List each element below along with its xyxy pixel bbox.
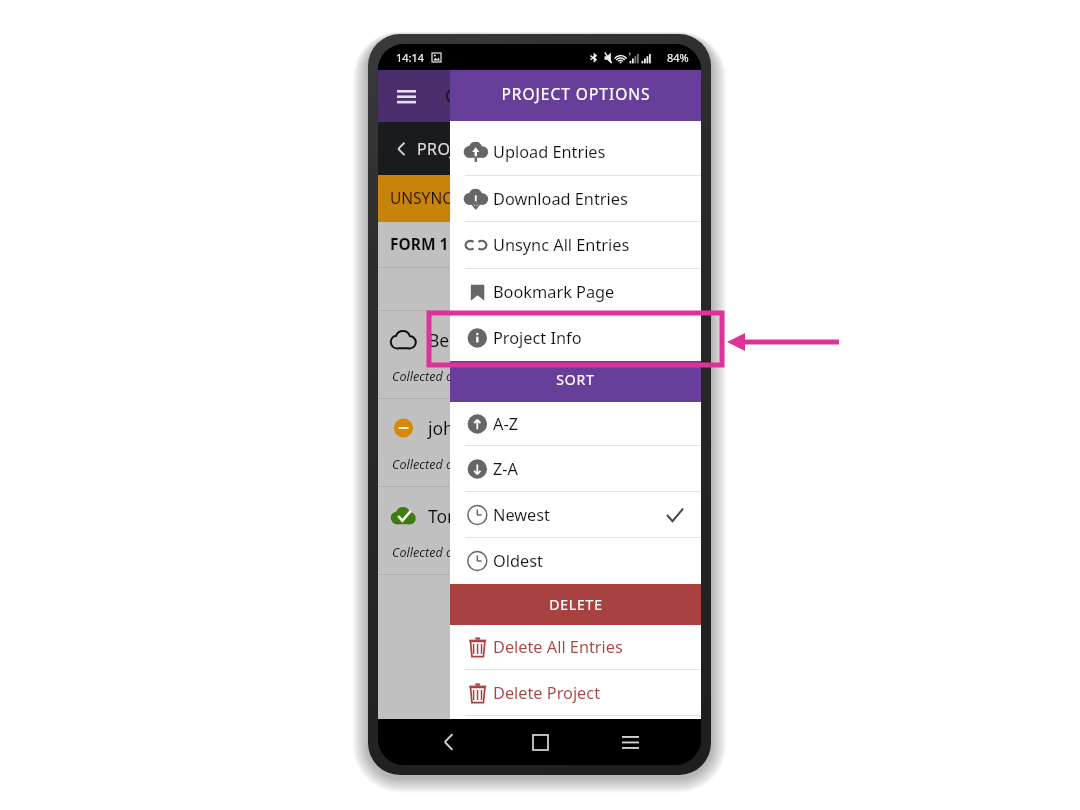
- staticText: DELETE: [549, 595, 603, 614]
- staticText: Bookmark Page: [493, 281, 615, 303]
- staticText: A-Z: [493, 413, 518, 435]
- staticText: Benjamin: [428, 328, 507, 352]
- staticText: PROJECT X: [417, 138, 499, 160]
- button[interactable]: Oldest: [450, 538, 701, 584]
- button[interactable]: Tom: [378, 487, 701, 574]
- staticText: Delete All Entries: [493, 636, 623, 658]
- staticText: UNSYNCED ENTRIES: [390, 187, 537, 208]
- staticText: 14:14: [396, 50, 425, 65]
- button[interactable]: Benjamin: [378, 311, 701, 398]
- staticText: Unsync All Entries: [493, 234, 630, 256]
- button[interactable]: A-Z: [450, 402, 701, 445]
- button[interactable]: Unsync All Entries: [450, 222, 701, 268]
- staticText: SORT: [556, 370, 595, 389]
- staticText: Oldest: [493, 550, 543, 572]
- button[interactable]: Delete Project: [450, 670, 701, 715]
- button[interactable]: Back: [429, 722, 469, 762]
- button[interactable]: Delete All Entries: [450, 625, 701, 669]
- staticText: Upload Entries: [493, 141, 606, 163]
- staticText: Delete Project: [493, 682, 601, 704]
- button[interactable]: Newest: [450, 492, 701, 537]
- button[interactable]: Home: [520, 722, 560, 762]
- button[interactable]: Search: [440, 82, 468, 110]
- staticText: john: [428, 416, 465, 440]
- staticText: Collected on 04/07/2021: [392, 368, 529, 385]
- staticText: Collected on 04/07/2021: [392, 456, 529, 473]
- button[interactable]: Project Info: [450, 315, 701, 361]
- button[interactable]: Menu: [388, 78, 424, 114]
- staticText: Project Info: [493, 327, 582, 349]
- staticText: FORM 1: [390, 233, 449, 254]
- staticText: PROJECT OPTIONS: [501, 83, 651, 104]
- staticText: Tom: [428, 504, 464, 528]
- staticText: Z-A: [493, 458, 518, 480]
- button[interactable]: Download Entries: [450, 176, 701, 221]
- button[interactable]: Recents: [610, 722, 650, 762]
- button[interactable]: Z-A: [450, 446, 701, 491]
- staticText: Download Entries: [493, 188, 628, 210]
- staticText: 84%: [667, 50, 689, 65]
- staticText: Collected on 04/07/2021: [392, 544, 529, 561]
- button[interactable]: Bookmark Page: [450, 269, 701, 314]
- button[interactable]: john: [378, 399, 701, 486]
- staticText: Newest: [493, 504, 550, 526]
- button[interactable]: Upload Entries: [450, 129, 701, 175]
